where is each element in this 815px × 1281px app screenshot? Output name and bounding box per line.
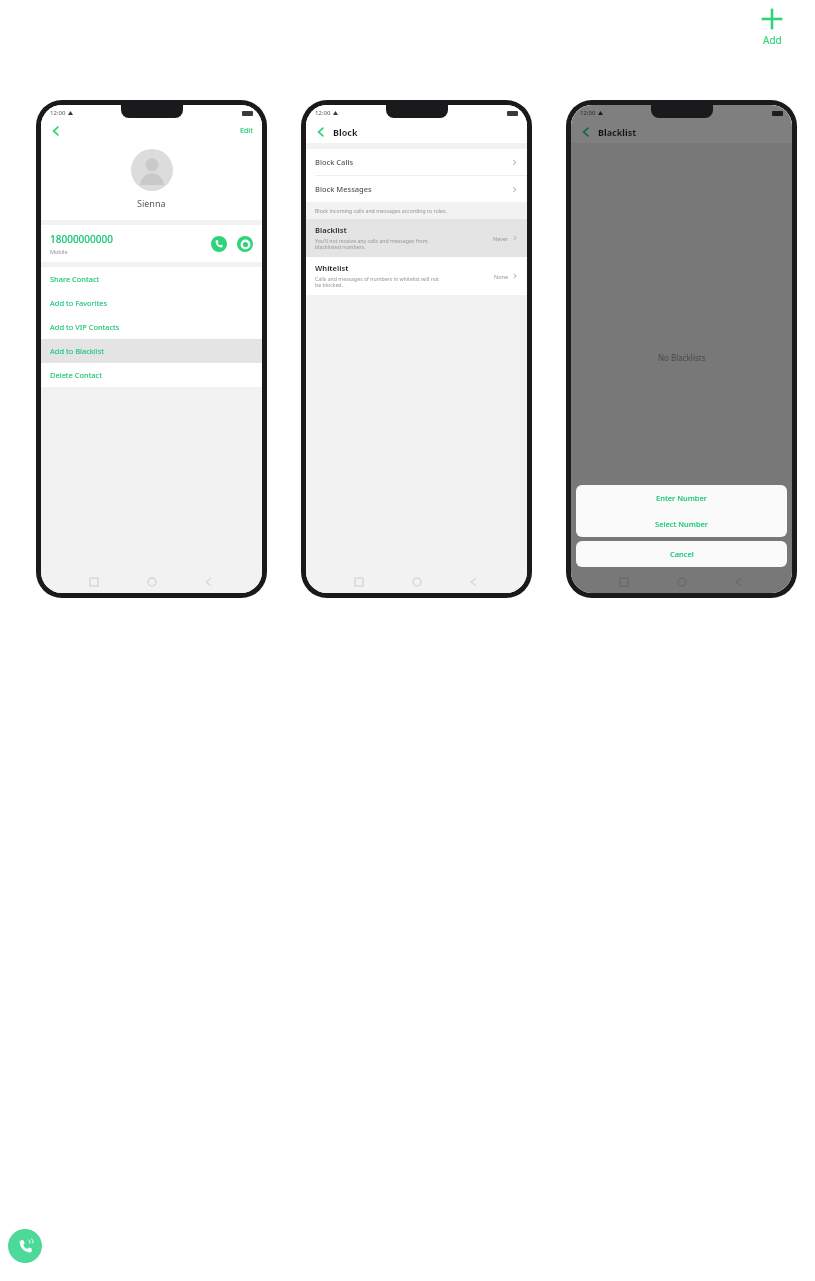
staticText: 12:00 [580, 109, 596, 117]
staticText: Edit [240, 126, 253, 136]
staticText: Add to Blacklist [50, 346, 104, 356]
staticText: Never [493, 235, 509, 242]
staticText: Add to VIP Contacts [50, 322, 120, 332]
staticText: Block Messages [315, 184, 511, 194]
button[interactable]: Block Calls [306, 149, 527, 175]
button[interactable]: Block Messages [306, 176, 527, 202]
button[interactable]: Call [211, 236, 227, 252]
button[interactable]: Back [50, 125, 62, 137]
staticText: Block Calls [315, 157, 511, 167]
button[interactable]: Message [237, 236, 253, 252]
button[interactable]: 18000000000 [41, 225, 262, 262]
button[interactable]: Add to Favorites [41, 291, 262, 315]
button[interactable]: Add to Blacklist [41, 339, 262, 363]
staticText: Select Number [655, 519, 709, 529]
button[interactable]: Whitelist [306, 257, 527, 295]
staticText: Add [763, 33, 782, 47]
staticText: Block [333, 126, 358, 138]
button[interactable]: Delete Contact [41, 363, 262, 387]
staticText: Add to Favorites [50, 298, 108, 308]
staticText: Cancel [670, 549, 694, 559]
button[interactable]: Enter Number [576, 485, 787, 511]
button[interactable]: Blacklist [306, 219, 527, 257]
staticText: Mobile [50, 248, 68, 255]
staticText: Calls and messages of numbers in whiteli… [315, 275, 439, 289]
button[interactable]: Add [751, 2, 793, 51]
staticText: You'll not receive any calls and message… [315, 237, 428, 251]
staticText: 18000000000 [50, 232, 113, 246]
staticText: Enter Number [656, 493, 707, 503]
staticText: Blacklist [315, 225, 347, 235]
button[interactable]: Cancel [576, 541, 787, 567]
staticText: Block incoming calls and messages accord… [315, 207, 447, 214]
button[interactable]: Back [580, 126, 592, 138]
staticText: Whitelist [315, 263, 349, 273]
button[interactable]: Add to VIP Contacts [41, 315, 262, 339]
staticText: Blacklist [598, 126, 637, 138]
staticText: None [494, 273, 509, 280]
button[interactable]: Call [8, 1229, 42, 1263]
staticText: Sienna [137, 197, 166, 209]
staticText: No Blacklists [658, 352, 706, 363]
button[interactable]: Edit [240, 126, 253, 136]
button[interactable]: Back [315, 126, 327, 138]
button[interactable]: Select Number [576, 511, 787, 537]
staticText: Delete Contact [50, 370, 102, 380]
staticText: 12:00 [50, 109, 66, 117]
staticText: Share Contact [50, 274, 100, 284]
staticText: 12:00 [315, 109, 331, 117]
button[interactable]: Share Contact [41, 267, 262, 291]
